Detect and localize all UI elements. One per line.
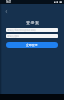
- staticText: 9:41: [6, 0, 12, 4]
- button[interactable]: 请输入密码: [6, 34, 58, 38]
- staticText: 立即登录: [26, 43, 38, 47]
- staticText: 请输入手机号码或电子邮箱: [7, 29, 36, 32]
- button[interactable]: 请输入手机号码或电子邮箱: [6, 28, 58, 32]
- staticText: 登 录 页: [26, 20, 39, 25]
- button[interactable]: 立即登录: [6, 42, 58, 48]
- staticText: 请输入密码: [7, 35, 19, 38]
- button[interactable]: Back: [2, 7, 10, 15]
